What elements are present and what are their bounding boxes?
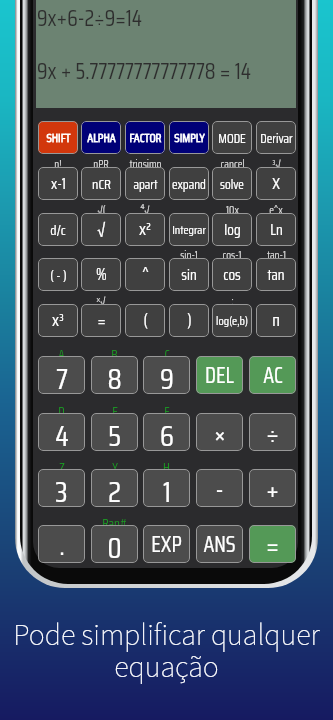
staticText: tan: [267, 263, 285, 287]
staticText: 4: [55, 413, 69, 451]
staticText: 9x + 5.77777777777778 = 14: [37, 54, 251, 89]
staticText: sin-1: [180, 247, 198, 261]
staticText: ( - ): [50, 264, 67, 286]
staticText: FACTOR: [129, 128, 162, 147]
button[interactable]: 7: [38, 356, 85, 394]
button[interactable]: 8: [91, 356, 138, 394]
button[interactable]: AC: [249, 356, 296, 394]
button[interactable]: 6: [143, 413, 190, 451]
button[interactable]: MODE: [212, 121, 252, 154]
staticText: 9x+6-2÷9=14: [37, 1, 143, 36]
button[interactable]: 2: [91, 469, 138, 507]
staticText: expand: [172, 174, 206, 194]
staticText: MODE: [218, 128, 246, 148]
staticText: F: [164, 401, 170, 415]
button[interactable]: EXP: [143, 525, 190, 563]
staticText: 0: [107, 525, 122, 563]
button[interactable]: ALPHA: [81, 121, 121, 154]
staticText: trigsimp: [129, 156, 162, 170]
button[interactable]: 4: [38, 413, 85, 451]
staticText: apart: [133, 174, 158, 194]
button[interactable]: x-1: [38, 167, 78, 200]
staticText: SIMPLY: [174, 128, 205, 147]
staticText: nPR: [93, 156, 109, 170]
button[interactable]: x²: [125, 213, 165, 246]
button[interactable]: apart: [125, 167, 165, 200]
button[interactable]: ÷: [249, 413, 296, 451]
button[interactable]: -: [196, 469, 243, 507]
staticText: x-1: [51, 172, 66, 196]
button[interactable]: x³: [38, 304, 78, 337]
staticText: 6: [160, 413, 174, 451]
staticText: 1: [163, 469, 171, 507]
staticText: Ln: [270, 218, 283, 242]
staticText: nCR: [92, 173, 111, 195]
button[interactable]: log(e,b): [212, 304, 252, 337]
staticText: SHIFT: [46, 128, 71, 147]
button[interactable]: log: [212, 213, 252, 246]
button[interactable]: tan: [256, 258, 296, 291]
button[interactable]: =: [81, 304, 121, 337]
button[interactable]: π: [256, 304, 296, 337]
button[interactable]: DEL: [196, 356, 243, 394]
button[interactable]: nCR: [81, 167, 121, 200]
button[interactable]: 9: [143, 356, 190, 394]
button[interactable]: =: [249, 525, 296, 563]
staticText: Ran#: [102, 513, 127, 527]
staticText: ALPHA: [87, 128, 116, 147]
staticText: log: [224, 218, 241, 242]
staticText: sin: [181, 263, 197, 287]
button[interactable]: (: [125, 304, 165, 337]
staticText: 8: [107, 356, 122, 394]
button[interactable]: X: [256, 167, 296, 200]
staticText: √: [97, 216, 106, 243]
button[interactable]: 3: [38, 469, 85, 507]
button[interactable]: Derivar: [256, 121, 296, 154]
button[interactable]: ×: [196, 413, 243, 451]
staticText: 5: [108, 413, 121, 451]
button[interactable]: ANS: [196, 525, 243, 563]
button[interactable]: ): [169, 304, 209, 337]
button[interactable]: expand: [169, 167, 209, 200]
button[interactable]: solve: [212, 167, 252, 200]
staticText: ⁴√: [140, 202, 150, 216]
staticText: √(: [97, 202, 106, 216]
button[interactable]: √: [81, 213, 121, 246]
staticText: B: [111, 344, 118, 358]
staticText: 7: [56, 356, 68, 394]
staticText: :: [231, 293, 234, 307]
staticText: cos-1: [222, 247, 242, 261]
staticText: x²: [139, 216, 151, 243]
button[interactable]: FACTOR: [125, 121, 165, 154]
staticText: Integrar: [172, 220, 206, 239]
button[interactable]: sin: [169, 258, 209, 291]
button[interactable]: 1: [143, 469, 190, 507]
staticText: ): [187, 307, 192, 334]
staticText: Derivar: [260, 128, 293, 148]
staticText: cos: [223, 263, 241, 287]
staticText: 10x: [226, 202, 239, 216]
staticText: n!: [54, 156, 62, 170]
staticText: Pode simplificar qualquer equação: [0, 614, 333, 689]
button[interactable]: Ln: [256, 213, 296, 246]
button[interactable]: ^: [125, 258, 165, 291]
button[interactable]: d/c: [38, 213, 78, 246]
staticText: DEL: [205, 358, 234, 393]
button[interactable]: SHIFT: [38, 121, 78, 154]
button[interactable]: cos: [212, 258, 252, 291]
button[interactable]: %: [81, 258, 121, 291]
button[interactable]: +: [249, 469, 296, 507]
button[interactable]: 5: [91, 413, 138, 451]
staticText: log(e,b): [216, 311, 248, 330]
staticText: e^x: [269, 202, 283, 216]
button[interactable]: Integrar: [169, 213, 209, 246]
staticText: -: [215, 469, 224, 507]
button[interactable]: 0: [91, 525, 138, 563]
button[interactable]: SIMPLY: [169, 121, 209, 154]
button[interactable]: ( - ): [38, 258, 78, 291]
staticText: EXP: [151, 527, 182, 562]
staticText: ˣ√: [96, 293, 106, 307]
staticText: =: [266, 525, 279, 563]
staticText: H: [163, 457, 170, 471]
button[interactable]: .: [38, 525, 85, 563]
